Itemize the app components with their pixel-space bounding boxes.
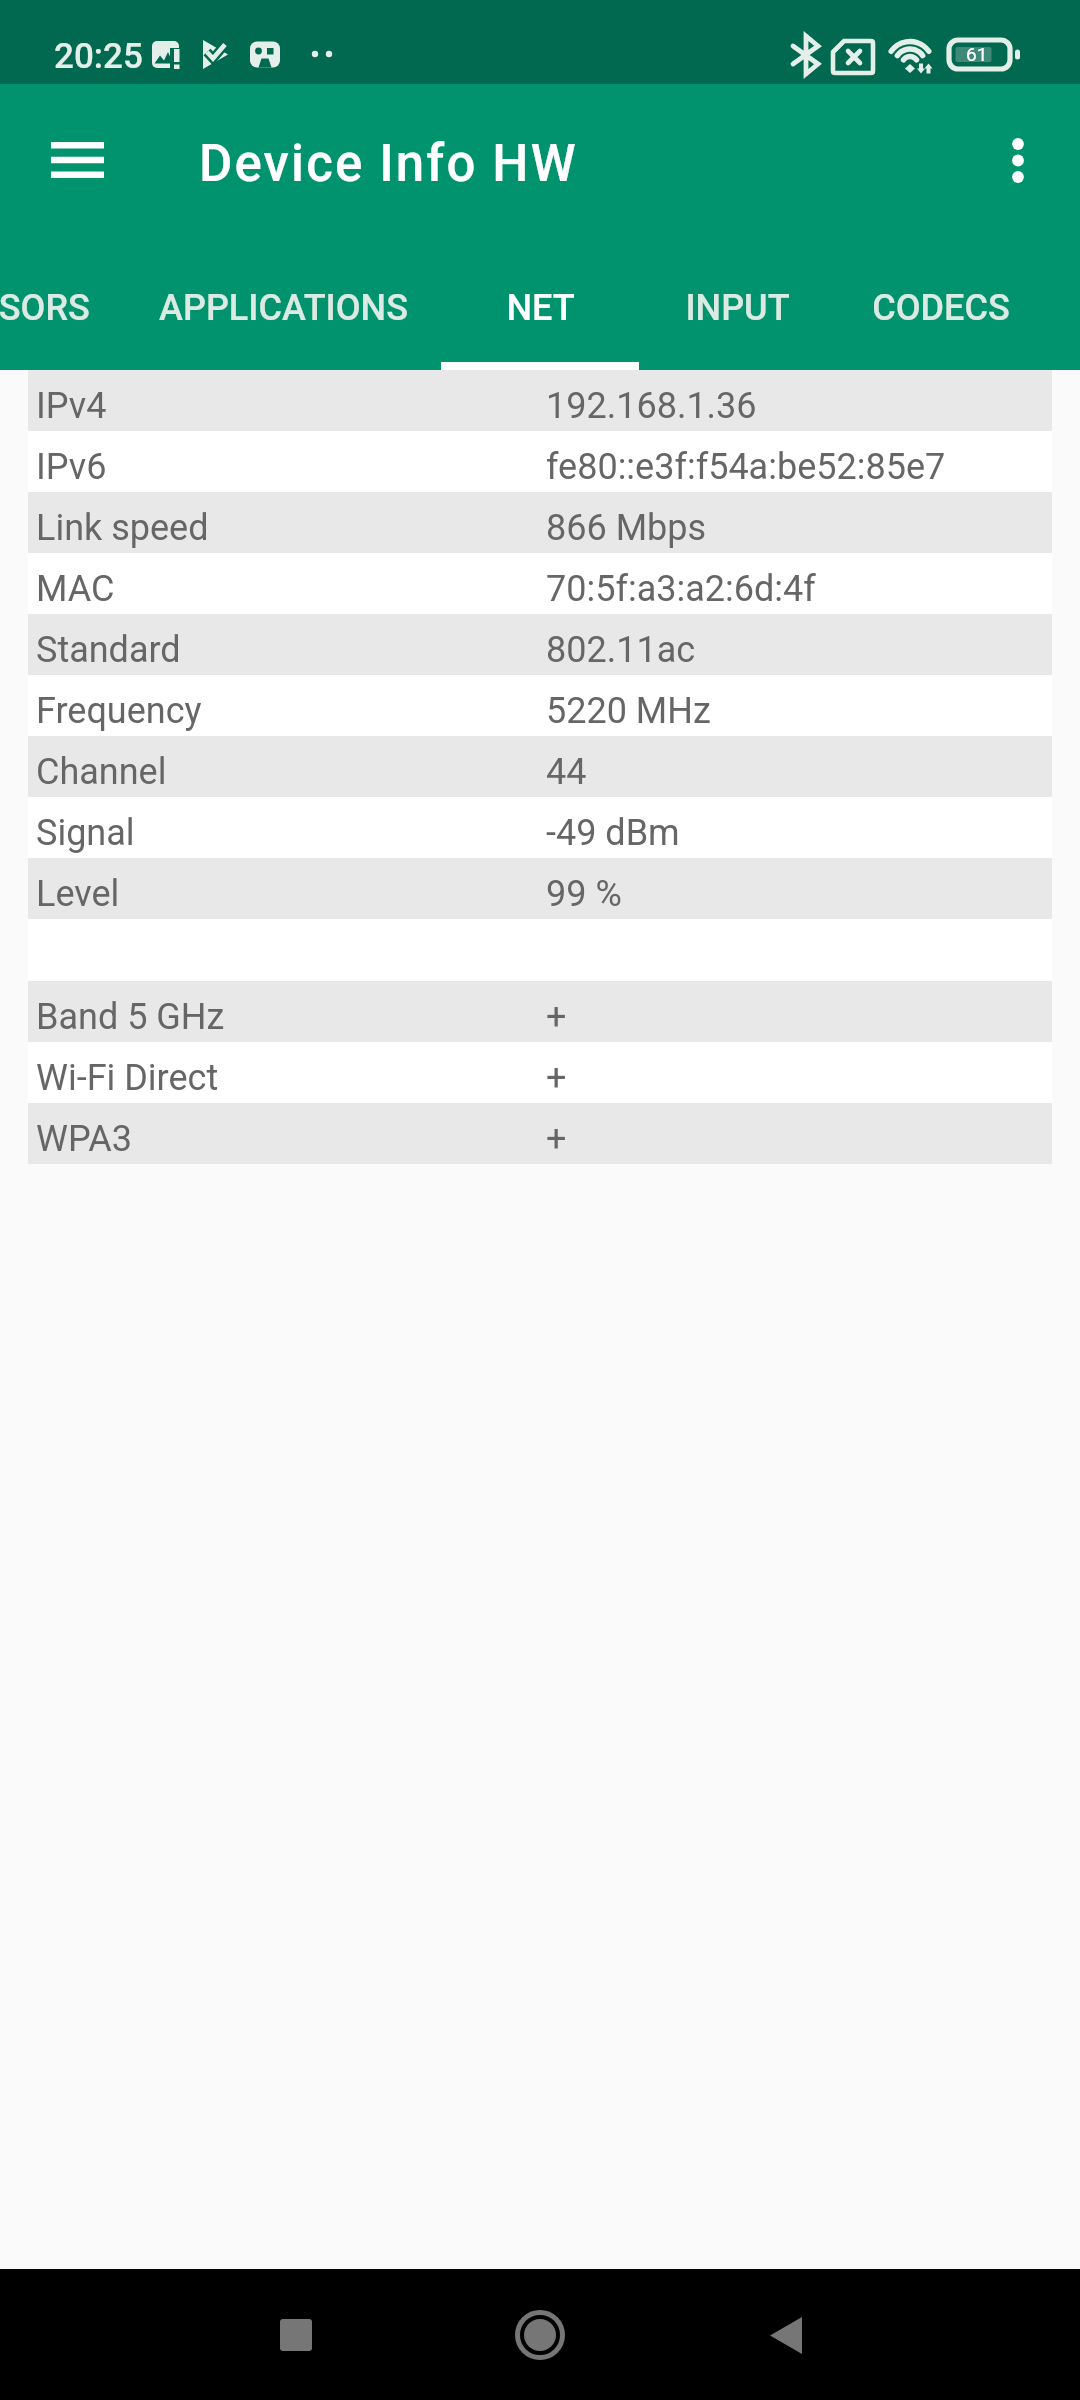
button[interactable]: Channel [28,736,1052,797]
staticText: Device Info HW [199,134,578,194]
button[interactable]: NET [441,236,639,370]
staticText: CODECS [872,287,1010,329]
button[interactable]: Standard [28,614,1052,675]
staticText: 192.168.1.36 [546,385,757,427]
button[interactable]: APPLICATIONS [125,236,441,370]
staticText: Link speed [36,507,209,549]
button[interactable]: INPUT [639,236,835,370]
staticText: IPv4 [36,385,107,427]
staticText: 99 % [546,873,622,915]
staticText: Frequency [36,690,202,732]
staticText: APPLICATIONS [159,287,408,329]
staticText: Band 5 GHz [36,996,225,1038]
button[interactable]: MAC [28,553,1052,614]
staticText: Signal [36,812,135,854]
staticText: Level [36,873,120,915]
staticText: WPA3 [36,1118,132,1160]
button[interactable]: Wi-Fi Direct [28,1042,1052,1103]
button[interactable]: SENSORS [0,236,125,370]
staticText: INPUT [685,287,790,329]
button[interactable]: Band 5 GHz [28,981,1052,1042]
staticText: fe80::e3f:f54a:be52:85e7 [546,446,946,488]
button[interactable]: Link speed [28,492,1052,553]
button[interactable]: Frequency [28,675,1052,736]
staticText: 61 [966,43,988,65]
button[interactable]: Recent apps [246,2285,346,2385]
staticText: + [546,996,567,1038]
button[interactable]: Home [490,2285,590,2385]
button[interactable]: Level [28,858,1052,919]
staticText: -49 dBm [546,812,680,854]
button[interactable]: Signal [28,797,1052,858]
staticText: MAC [36,568,115,610]
staticText: Standard [36,629,181,671]
staticText: 20:25 [54,36,143,77]
button[interactable]: Back [736,2285,836,2385]
staticText: 802.11ac [546,629,696,671]
button[interactable]: IPv6 [28,431,1052,492]
button[interactable]: CODECS [835,236,1047,370]
staticText: Wi-Fi Direct [36,1057,219,1099]
button[interactable]: IPv4 [28,370,1052,431]
staticText: 70:5f:a3:a2:6d:4f [546,568,816,610]
staticText: IPv6 [36,446,107,488]
button[interactable]: WPA3 [28,1103,1052,1164]
staticText: + [546,1057,567,1099]
staticText: 44 [546,751,587,793]
staticText: SENSORS [0,287,90,329]
staticText: + [546,1118,567,1160]
staticText: Channel [36,751,167,793]
button[interactable]: Open navigation drawer [25,108,129,212]
staticText: NET [506,287,575,329]
staticText: 866 Mbps [546,507,707,549]
button[interactable]: More options [968,110,1068,210]
staticText: 5220 MHz [546,690,711,732]
